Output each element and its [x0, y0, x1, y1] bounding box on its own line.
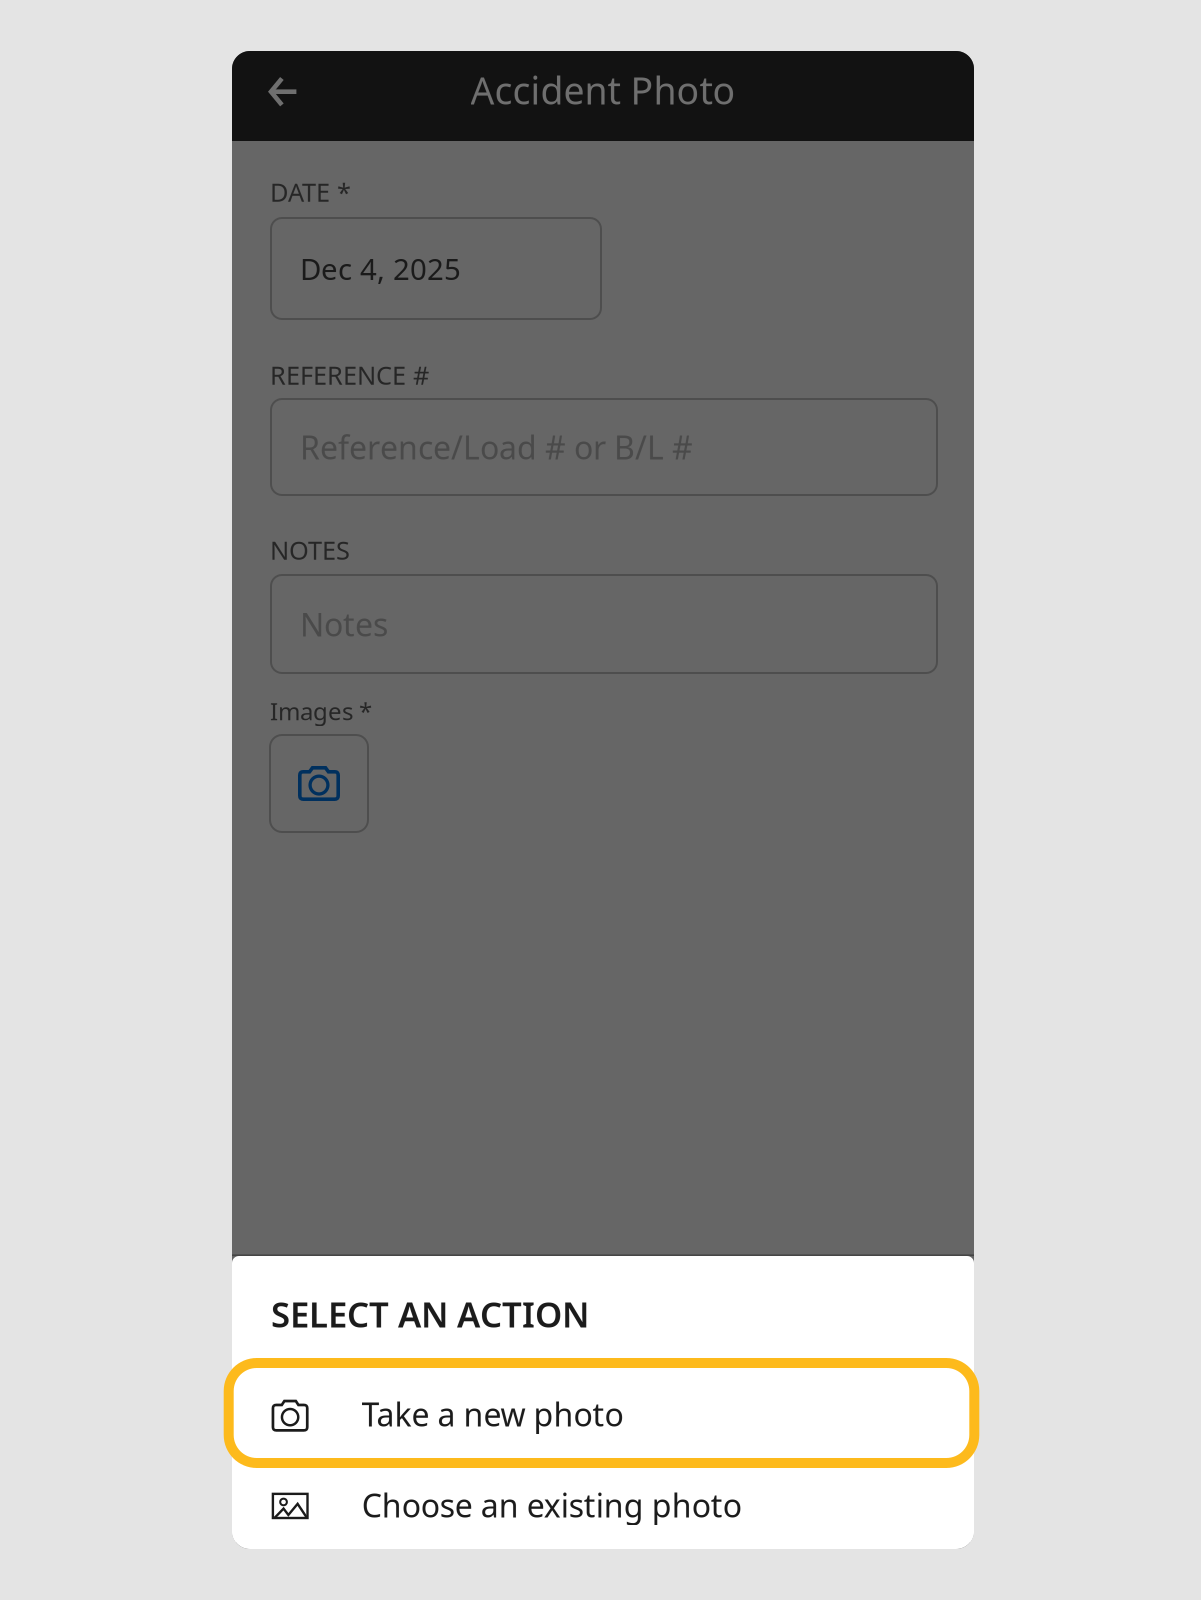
staticText: REFERENCE #	[270, 358, 429, 392]
staticText: DATE *	[270, 175, 351, 209]
staticText: Images *	[270, 695, 372, 727]
staticText: NOTES	[270, 533, 350, 567]
staticText: Notes	[300, 603, 388, 645]
button[interactable]: Take a new photo	[232, 1358, 974, 1468]
button[interactable]: Dec 4, 2025	[270, 217, 602, 320]
button[interactable]: Reference/Load # or B/L #	[270, 398, 938, 496]
button[interactable]: Notes	[270, 574, 938, 674]
button[interactable]: Choose an existing photo	[232, 1472, 974, 1542]
staticText: Choose an existing photo	[362, 1484, 742, 1526]
staticText: Accident Photo	[470, 65, 735, 115]
staticText: Reference/Load # or B/L #	[300, 426, 693, 468]
button[interactable]: Add photo	[269, 734, 369, 833]
button[interactable]: Back	[247, 55, 321, 129]
staticText: Take a new photo	[362, 1393, 624, 1435]
staticText: Dec 4, 2025	[300, 249, 461, 288]
staticText: SELECT AN ACTION	[271, 1291, 589, 1337]
